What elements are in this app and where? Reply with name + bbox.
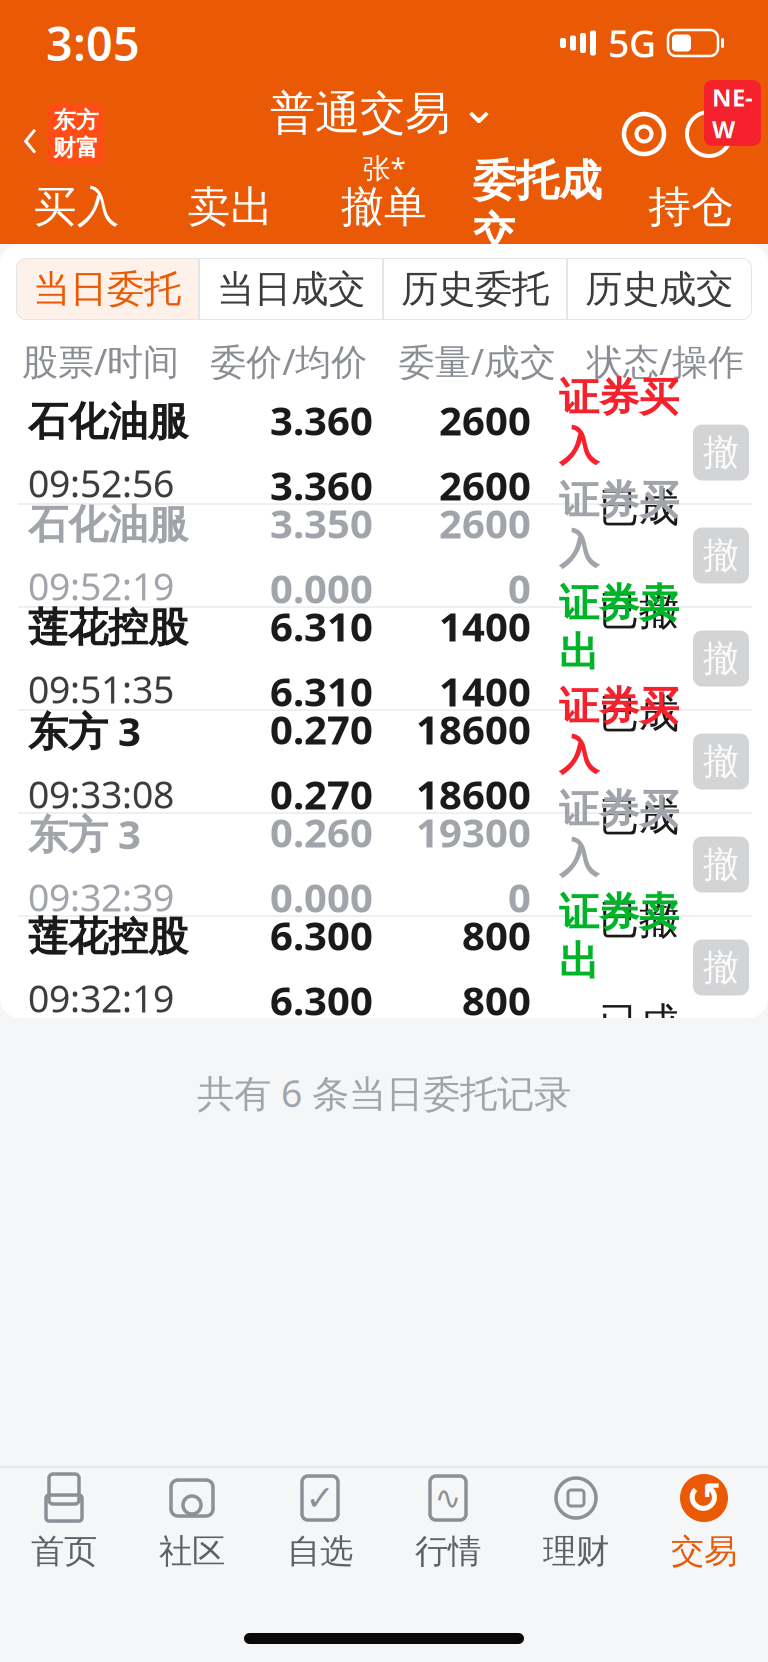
staticText: ‹ <box>22 93 38 175</box>
staticText: 3:05 <box>46 12 140 74</box>
button[interactable]: ∿ <box>384 1468 512 1578</box>
staticText: 已撤 <box>599 586 679 635</box>
staticText: 委价/均价 <box>210 337 367 385</box>
staticText: 3.350 <box>270 496 373 549</box>
button[interactable]: 当日委托 <box>16 258 200 320</box>
staticText: 09:52:19 <box>28 561 174 611</box>
staticText: 证券买入 <box>559 373 679 471</box>
staticText: 已成 <box>599 483 679 532</box>
staticText: 撤 <box>703 945 739 990</box>
staticText: 股票/时间 <box>22 337 179 385</box>
staticText: 1400 <box>439 599 531 652</box>
staticText: 当日委托 <box>33 266 181 312</box>
staticText: 财富 <box>53 134 99 162</box>
button[interactable]: 历史委托 <box>384 258 568 320</box>
staticText: 已撤 <box>599 895 679 944</box>
button[interactable]: 撤单 东方 3 <box>693 733 749 789</box>
button[interactable]: 理财 <box>512 1468 640 1578</box>
staticText: 0.260 <box>270 805 373 858</box>
staticText: 5G <box>608 18 656 68</box>
staticText: 09:32:39 <box>28 872 174 922</box>
staticText: 普通交易 <box>270 86 450 141</box>
staticText: 09:51:35 <box>28 664 174 714</box>
staticText: 共有 6 条当日委托记录 <box>197 1068 571 1118</box>
staticText: 首页 <box>31 1531 97 1572</box>
button[interactable]: 撤单 石化油服 <box>693 527 749 583</box>
staticText: 社区 <box>159 1531 225 1572</box>
staticText: 撤 <box>703 842 739 887</box>
button[interactable]: 卖出 <box>154 182 307 244</box>
staticText: NEW <box>712 81 753 145</box>
staticText: 已成 <box>599 689 679 738</box>
staticText: 证券买入 <box>559 476 679 574</box>
staticText: 理财 <box>543 1531 609 1572</box>
button[interactable]: 持仓 <box>614 182 768 244</box>
staticText: 09:33:08 <box>28 769 174 819</box>
staticText: 撤 <box>703 533 739 578</box>
staticText: 19300 <box>416 805 531 858</box>
staticText: 2600 <box>439 496 531 549</box>
button[interactable]: 社区 <box>128 1468 256 1578</box>
staticText: 撤单 <box>341 181 427 233</box>
staticText: 撤 <box>703 430 739 475</box>
button[interactable]: ✓ <box>256 1468 384 1578</box>
staticText: 东方 3 <box>28 807 141 860</box>
staticText: 证券买入 <box>559 785 679 883</box>
staticText: 委量/成交 <box>399 337 556 385</box>
staticText: 石化油服 <box>28 500 188 549</box>
button[interactable]: 买入 <box>0 182 154 244</box>
staticText: 历史成交 <box>585 266 733 312</box>
staticText: 莲花控股 <box>28 603 188 652</box>
button[interactable]: 设置 <box>612 90 676 178</box>
staticText: 证券卖出 <box>559 888 679 986</box>
button[interactable]: 撤单 石化油服 <box>693 424 749 480</box>
button[interactable]: ↺ <box>640 1468 768 1578</box>
staticText: 东方 3 <box>28 704 141 757</box>
staticText: 0.000 <box>270 561 373 615</box>
staticText: 0.270 <box>270 702 373 755</box>
button[interactable]: 撤单 东方 3 <box>693 836 749 892</box>
staticText: 莲花控股 <box>28 912 188 961</box>
button[interactable]: 刷新 <box>676 90 742 178</box>
staticText: 证券买入 <box>559 682 679 780</box>
staticText: 东方 <box>53 106 99 134</box>
staticText: 行情 <box>415 1531 481 1572</box>
button[interactable]: 当日成交 <box>200 258 384 320</box>
staticText: 历史委托 <box>401 266 549 312</box>
staticText: 09:52:56 <box>28 458 174 508</box>
staticText: 1400 <box>439 664 531 718</box>
staticText: 石化油服 <box>28 397 188 446</box>
staticText: 18600 <box>416 767 531 821</box>
button[interactable]: 历史成交 <box>568 258 752 320</box>
staticText: 证券卖出 <box>559 579 679 677</box>
button[interactable]: 撤单 莲花控股 <box>693 630 749 686</box>
staticText: 3.360 <box>270 393 373 446</box>
staticText: 已成 <box>599 998 679 1047</box>
button[interactable]: 返回 <box>0 88 118 180</box>
staticText: 2600 <box>439 393 531 446</box>
staticText: 6.300 <box>270 973 373 1027</box>
staticText: ∿ <box>434 1480 461 1516</box>
staticText: 张* <box>362 149 405 186</box>
staticText: 6.300 <box>270 908 373 961</box>
staticText: 3.360 <box>270 458 373 512</box>
button[interactable]: 委托成交 <box>461 182 614 244</box>
staticText: 6.310 <box>270 599 373 652</box>
staticText: 持仓 <box>648 181 734 233</box>
staticText: 状态/操作 <box>587 337 744 385</box>
staticText: 交易 <box>671 1531 737 1572</box>
button[interactable]: 首页 <box>0 1468 128 1578</box>
staticText: ⌄ <box>460 82 498 133</box>
staticText: 18600 <box>416 702 531 755</box>
staticText: ✓ <box>305 1478 334 1518</box>
staticText: 800 <box>462 973 531 1027</box>
staticText: 撤 <box>703 739 739 784</box>
staticText: 委托成交 <box>473 155 602 259</box>
staticText: 0.270 <box>270 767 373 821</box>
staticText: 买入 <box>34 181 120 233</box>
button[interactable]: 撤单 <box>307 182 461 244</box>
staticText: 已成 <box>599 792 679 841</box>
staticText: 自选 <box>287 1531 353 1572</box>
staticText: ↺ <box>686 1474 722 1522</box>
button[interactable]: 撤单 莲花控股 <box>693 939 749 995</box>
